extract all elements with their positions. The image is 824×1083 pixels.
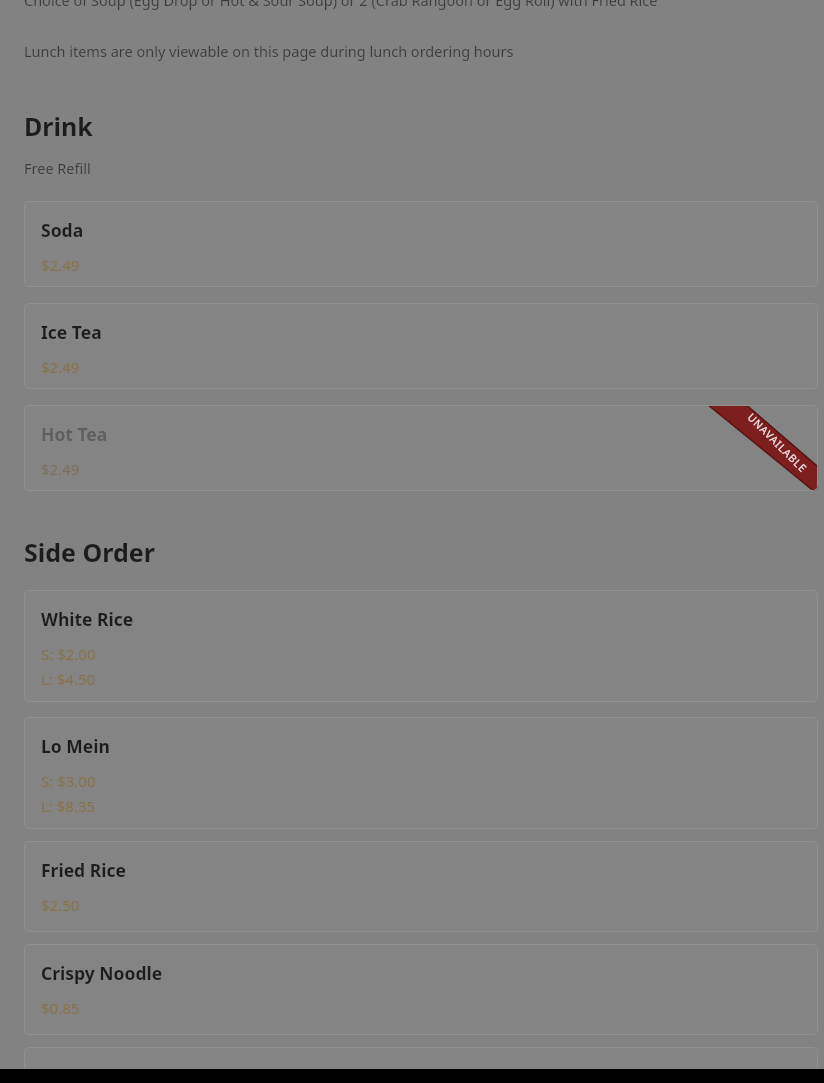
- staticText: $2.49: [41, 459, 80, 479]
- staticText: Soda: [41, 218, 84, 242]
- staticText: Fried Rice: [41, 858, 126, 882]
- staticText: Choice of Soup (Egg Drop or Hot & Sour S…: [24, 0, 658, 10]
- button[interactable]: Sweet & Sour Sauce: [24, 1047, 818, 1083]
- button[interactable]: Soda: [24, 201, 818, 287]
- staticText: $2.49: [41, 357, 80, 377]
- button[interactable]: Ice Tea: [24, 303, 818, 389]
- staticText: Side Order: [24, 535, 155, 569]
- staticText: L: $4.50: [41, 669, 96, 689]
- staticText: UNAVAILABLE: [745, 410, 810, 476]
- staticText: Free Refill: [24, 158, 91, 178]
- staticText: Sweet & Sour Sauce: [41, 1064, 212, 1083]
- staticText: Crispy Noodle: [41, 961, 163, 985]
- staticText: L: $8.35: [41, 796, 96, 816]
- staticText: Hot Tea: [41, 422, 108, 446]
- staticText: $2.50: [41, 895, 80, 915]
- button[interactable]: White Rice: [24, 590, 818, 702]
- staticText: White Rice: [41, 607, 134, 631]
- staticText: S: $2.00: [41, 644, 96, 664]
- staticText: Lunch items are only viewable on this pa…: [24, 41, 514, 61]
- button[interactable]: Lo Mein: [24, 717, 818, 829]
- other: Unavailable item: [706, 405, 818, 491]
- button[interactable]: Fried Rice: [24, 841, 818, 932]
- staticText: Lo Mein: [41, 734, 110, 758]
- staticText: $0.85: [41, 998, 80, 1018]
- button[interactable]: Crispy Noodle: [24, 944, 818, 1035]
- staticText: $2.49: [41, 255, 80, 275]
- staticText: S: $3.00: [41, 771, 96, 791]
- staticText: Ice Tea: [41, 320, 102, 344]
- button[interactable]: Hot Tea: [24, 405, 818, 491]
- staticText: Drink: [24, 109, 93, 143]
